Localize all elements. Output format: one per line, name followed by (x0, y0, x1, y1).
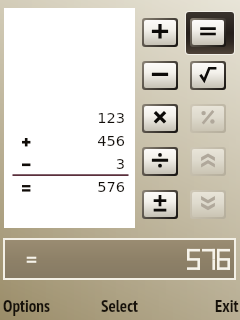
button[interactable]: sqrt (192, 63, 224, 88)
button[interactable]: times (144, 106, 176, 131)
button[interactable]: Select (101, 295, 139, 317)
button[interactable]: Result display (5, 240, 234, 278)
button[interactable]: 123 (4, 8, 135, 228)
button[interactable]: up (192, 149, 224, 174)
button[interactable]: percent (192, 106, 224, 131)
staticText: Select (101, 295, 139, 317)
staticText: Exit (215, 295, 239, 317)
button[interactable]: plusminus (144, 192, 176, 217)
staticText: 576 (4, 178, 125, 195)
staticText: 456 (4, 132, 125, 149)
button[interactable]: minus (144, 63, 176, 88)
button[interactable]: divide (144, 149, 176, 174)
staticText: Options (3, 295, 50, 317)
button[interactable]: Options (3, 295, 50, 317)
staticText: 3 (4, 155, 125, 172)
button[interactable]: Exit (215, 295, 239, 317)
button[interactable]: plus (144, 20, 176, 45)
button[interactable]: down (192, 192, 224, 217)
button[interactable]: equals (192, 20, 224, 45)
staticText: 123 (4, 109, 125, 126)
